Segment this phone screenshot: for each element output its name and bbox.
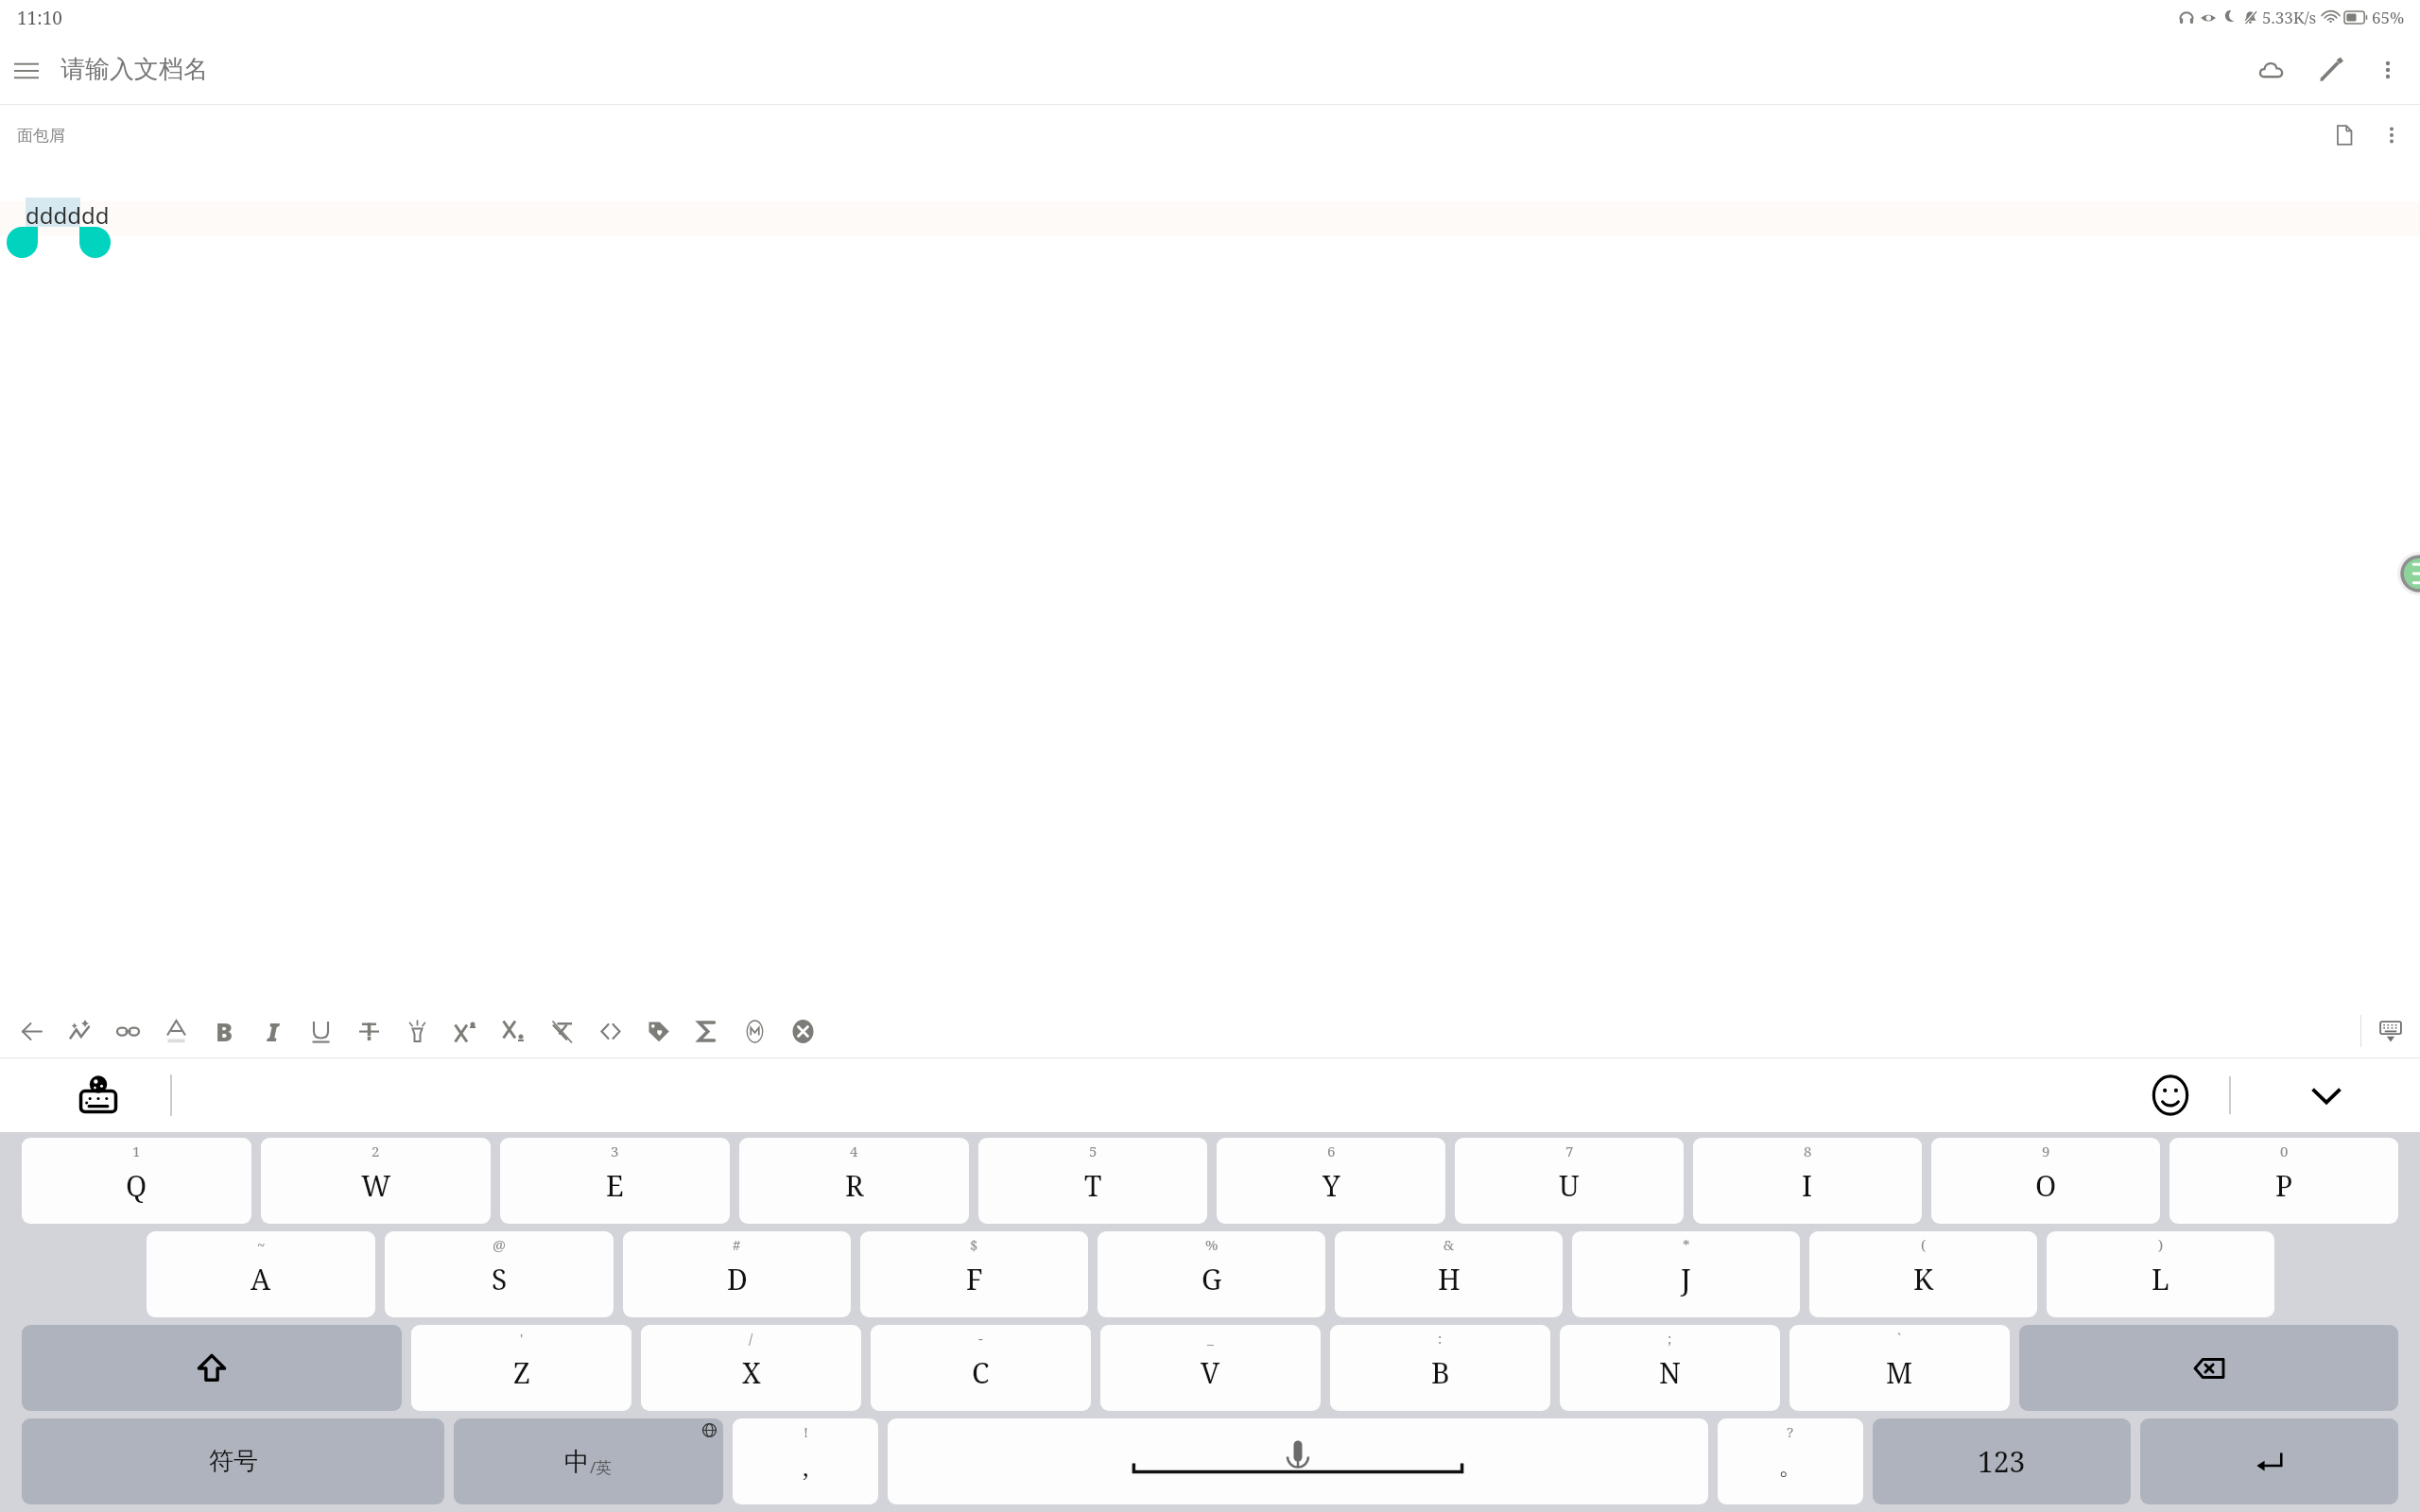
staticText: 1 xyxy=(132,1142,141,1160)
button[interactable]: Cloud xyxy=(2240,40,2301,100)
button[interactable]: ! xyxy=(733,1418,878,1504)
button[interactable]: AI tools xyxy=(56,1005,104,1057)
button[interactable]: More xyxy=(2369,112,2414,158)
staticText: Y xyxy=(1322,1166,1340,1205)
button[interactable]: Highlight xyxy=(393,1005,441,1057)
button[interactable]: Selection end handle xyxy=(79,227,111,258)
staticText: ! xyxy=(804,1422,808,1441)
button[interactable]: Menu xyxy=(0,43,53,96)
button[interactable]: 2 xyxy=(261,1138,491,1224)
button[interactable]: Document xyxy=(2320,111,2369,160)
button[interactable]: ; xyxy=(1560,1325,1780,1411)
button[interactable]: Insert link xyxy=(104,1005,152,1057)
button[interactable]: Subscript xyxy=(490,1005,538,1057)
button[interactable]: Markdown xyxy=(731,1005,779,1057)
button[interactable]: 123 xyxy=(1873,1418,2131,1504)
button[interactable]: ` xyxy=(1789,1325,2010,1411)
button[interactable]: ( xyxy=(1809,1231,2037,1317)
staticText: I xyxy=(268,1014,279,1049)
button[interactable]: $ xyxy=(860,1231,1088,1317)
staticText: 符号 xyxy=(209,1446,258,1477)
staticText: D xyxy=(727,1260,748,1298)
button[interactable]: Text color xyxy=(152,1005,200,1057)
button[interactable]: : xyxy=(1330,1325,1550,1411)
button[interactable]: Space xyxy=(888,1418,1708,1504)
staticText: B xyxy=(216,1014,233,1049)
staticText: 中 xyxy=(564,1446,590,1478)
button[interactable]: Strikethrough xyxy=(345,1005,393,1057)
staticText: $ xyxy=(970,1235,978,1254)
button[interactable]: Close xyxy=(779,1005,827,1057)
staticText: P xyxy=(2275,1166,2293,1205)
button[interactable]: Formula xyxy=(683,1005,731,1057)
button[interactable]: 4 xyxy=(739,1138,969,1224)
button[interactable]: Enter xyxy=(2140,1418,2398,1504)
staticText: 3 xyxy=(611,1142,619,1160)
button[interactable]: Backspace xyxy=(2019,1325,2398,1411)
button[interactable]: More options xyxy=(2361,43,2414,96)
button[interactable]: ) xyxy=(2047,1231,2274,1317)
button[interactable]: 面包屑 xyxy=(17,126,65,146)
button[interactable]: B xyxy=(200,1005,249,1057)
button[interactable]: ? xyxy=(1718,1418,1863,1504)
staticText: C xyxy=(972,1353,990,1392)
button[interactable]: 1 xyxy=(22,1138,251,1224)
staticText: 5 xyxy=(1089,1142,1098,1160)
button[interactable]: Hide keyboard xyxy=(2361,1004,2420,1058)
button[interactable]: / xyxy=(641,1325,861,1411)
staticText: 2 xyxy=(372,1142,380,1160)
staticText: O xyxy=(2035,1166,2057,1205)
button[interactable]: 0 xyxy=(2169,1138,2398,1224)
button[interactable]: - xyxy=(871,1325,1091,1411)
button[interactable]: @ xyxy=(385,1231,614,1317)
button[interactable]: Floating assistant xyxy=(2397,552,2420,595)
button[interactable]: 6 xyxy=(1217,1138,1445,1224)
staticText: % xyxy=(1205,1235,1219,1254)
button[interactable]: Selection start handle xyxy=(7,227,38,258)
button[interactable]: ~ xyxy=(147,1231,375,1317)
button[interactable]: I xyxy=(249,1005,297,1057)
staticText: V xyxy=(1201,1353,1220,1392)
button[interactable]: Switch input method xyxy=(72,1069,125,1122)
staticText: # xyxy=(733,1235,741,1254)
staticText: dddddd xyxy=(26,199,110,231)
staticText: ) xyxy=(2158,1235,2164,1254)
button[interactable]: % xyxy=(1098,1231,1325,1317)
staticText: : xyxy=(1438,1329,1443,1348)
button[interactable]: ' xyxy=(411,1325,631,1411)
button[interactable]: 3 xyxy=(500,1138,730,1224)
button[interactable]: Superscript xyxy=(441,1005,490,1057)
staticText: ( xyxy=(1921,1235,1927,1254)
staticText: - xyxy=(978,1329,983,1348)
staticText: X xyxy=(742,1353,761,1392)
staticText: / xyxy=(749,1329,753,1348)
button[interactable]: Back xyxy=(8,1005,56,1057)
staticText: Z xyxy=(513,1353,530,1392)
button[interactable]: 中 xyxy=(454,1418,723,1504)
staticText: G xyxy=(1201,1260,1222,1298)
button[interactable]: _ xyxy=(1100,1325,1321,1411)
staticText: & xyxy=(1443,1235,1455,1254)
staticText: M xyxy=(1886,1353,1913,1392)
staticText: R xyxy=(845,1166,864,1205)
button[interactable]: 7 xyxy=(1455,1138,1684,1224)
button[interactable]: * xyxy=(1572,1231,1800,1317)
button[interactable]: # xyxy=(623,1231,851,1317)
button[interactable]: 符号 xyxy=(22,1418,444,1504)
button[interactable]: & xyxy=(1335,1231,1563,1317)
button[interactable]: 5 xyxy=(978,1138,1207,1224)
staticText: F xyxy=(966,1260,983,1298)
staticText: ' xyxy=(520,1329,524,1348)
button[interactable]: Shift xyxy=(22,1325,402,1411)
button[interactable]: Emoji xyxy=(2144,1069,2197,1122)
button[interactable]: Underline xyxy=(297,1005,345,1057)
staticText: U xyxy=(1559,1166,1580,1205)
button[interactable]: Clear format xyxy=(538,1005,586,1057)
button[interactable]: 9 xyxy=(1931,1138,2160,1224)
button[interactable]: 8 xyxy=(1693,1138,1922,1224)
button[interactable]: Hide keyboard xyxy=(2297,1066,2356,1125)
button[interactable]: Code xyxy=(586,1005,634,1057)
button[interactable]: Tag xyxy=(634,1005,683,1057)
button[interactable]: Edit xyxy=(2301,40,2361,100)
staticText: , xyxy=(803,1450,809,1483)
